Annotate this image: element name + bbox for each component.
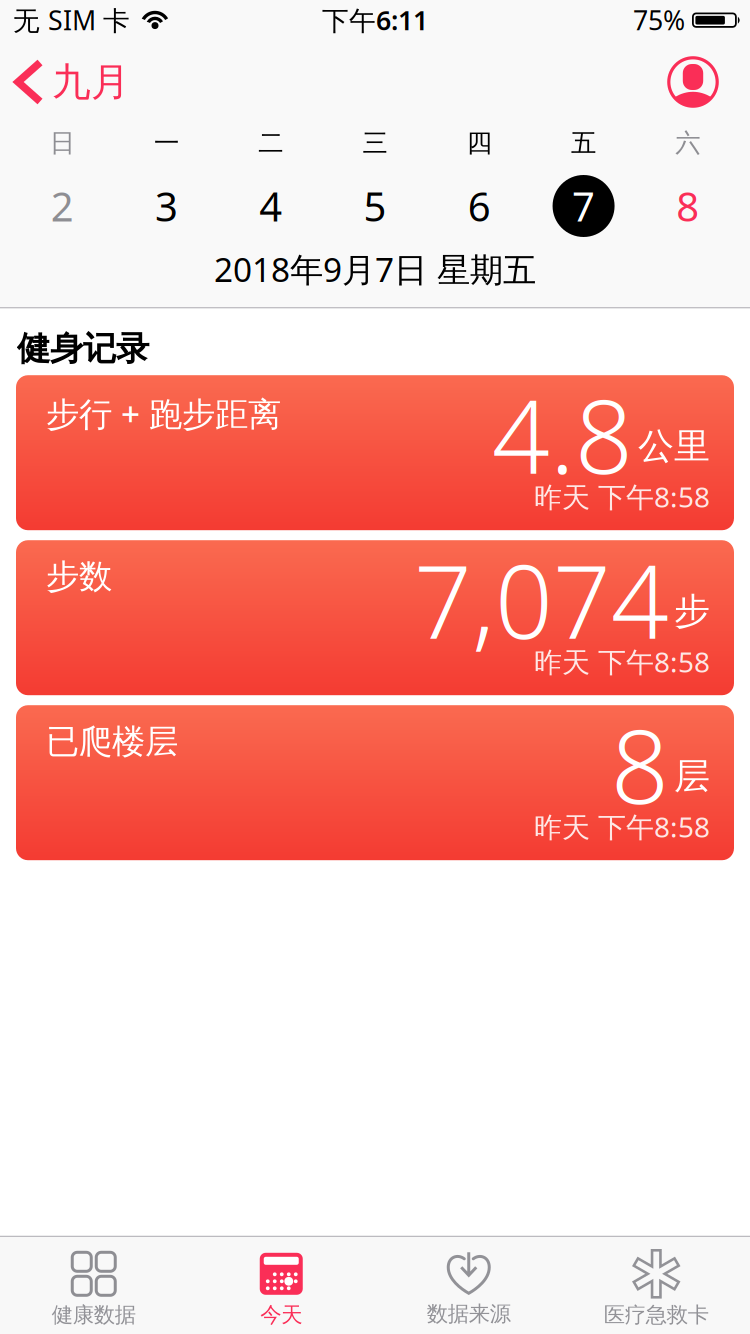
staticText: 三 [362, 127, 387, 158]
staticText: 层 [674, 754, 710, 798]
staticText: 8 [611, 697, 669, 832]
staticText: 日 [50, 127, 75, 158]
staticText: 3 [155, 179, 178, 232]
staticText: 步数 [46, 556, 112, 597]
button[interactable]: 今天 [187, 1251, 375, 1328]
staticText: 无 SIM 卡 [13, 2, 130, 38]
staticText: 昨天 下午8:58 [534, 643, 710, 680]
staticText: 四 [467, 127, 492, 158]
staticText: 九月 [52, 58, 130, 106]
button[interactable]: 医疗急救卡 [562, 1251, 750, 1328]
button[interactable]: 步数 [16, 540, 734, 695]
button[interactable]: 3 [114, 179, 219, 232]
staticText: 下午6:11 [322, 2, 428, 38]
button[interactable]: 2 [10, 179, 114, 232]
staticText: 5 [363, 179, 386, 232]
staticText: 8 [676, 179, 699, 232]
button[interactable]: 8 [636, 179, 740, 232]
staticText: 2 [51, 179, 74, 232]
button[interactable]: 数据来源 [375, 1252, 562, 1327]
staticText: 六 [675, 127, 700, 158]
staticText: 二 [258, 127, 283, 158]
staticText: 7,074 [414, 532, 669, 667]
button[interactable]: 已爬楼层 [16, 705, 734, 860]
button[interactable]: 健康资料 [667, 56, 719, 108]
staticText: 已爬楼层 [46, 721, 178, 762]
staticText: 4 [259, 179, 282, 232]
button[interactable]: 7 [531, 175, 636, 237]
staticText: 一 [154, 127, 179, 158]
staticText: 五 [571, 127, 596, 158]
staticText: 数据来源 [427, 1301, 511, 1327]
button[interactable]: 6 [427, 179, 531, 232]
button[interactable]: 步行 + 跑步距离 [16, 375, 734, 530]
staticText: 公里 [638, 424, 710, 468]
staticText: 75% [633, 2, 685, 38]
staticText: 今天 [260, 1302, 302, 1328]
staticText: 步行 + 跑步距离 [46, 391, 281, 435]
staticText: 7 [572, 179, 595, 232]
button[interactable]: 九月 [14, 58, 130, 106]
staticText: 健康数据 [52, 1302, 136, 1328]
button[interactable]: 健康数据 [0, 1251, 187, 1328]
staticText: 2018年9月7日 星期五 [214, 247, 536, 291]
staticText: 医疗急救卡 [604, 1302, 709, 1328]
staticText: 昨天 下午8:58 [534, 808, 710, 845]
button[interactable]: 5 [323, 179, 427, 232]
staticText: 健身记录 [17, 328, 149, 369]
button[interactable]: 4 [219, 179, 323, 232]
staticText: 步 [674, 589, 710, 633]
staticText: 昨天 下午8:58 [534, 478, 710, 515]
staticText: 6 [468, 179, 491, 232]
staticText: 4.8 [492, 367, 633, 502]
